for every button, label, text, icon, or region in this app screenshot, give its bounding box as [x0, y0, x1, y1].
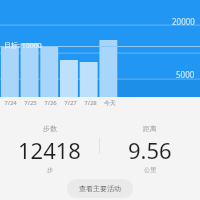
staticText: 查看主要活动 [79, 184, 121, 193]
staticText: 公里 [144, 166, 156, 174]
staticText: 12418 [18, 135, 81, 165]
staticText: 7/26 [44, 99, 57, 107]
staticText: 7/28 [84, 99, 97, 107]
staticText: 步数 [43, 124, 57, 133]
button[interactable]: 步数 [0, 124, 99, 174]
staticText: 距离 [143, 124, 157, 133]
staticText: 7/24 [4, 99, 17, 107]
staticText: 9.56 [128, 135, 172, 165]
staticText: 今天 [104, 99, 116, 107]
staticText: 20000 [172, 16, 195, 27]
staticText: 7/25 [24, 99, 37, 107]
staticText: 5000 [176, 69, 195, 80]
button[interactable]: 查看主要活动 [67, 179, 133, 198]
button[interactable]: 距离 [100, 124, 200, 174]
staticText: 目标: 10000 [4, 41, 42, 51]
staticText: 步 [47, 166, 53, 174]
staticText: 7/27 [64, 99, 77, 107]
